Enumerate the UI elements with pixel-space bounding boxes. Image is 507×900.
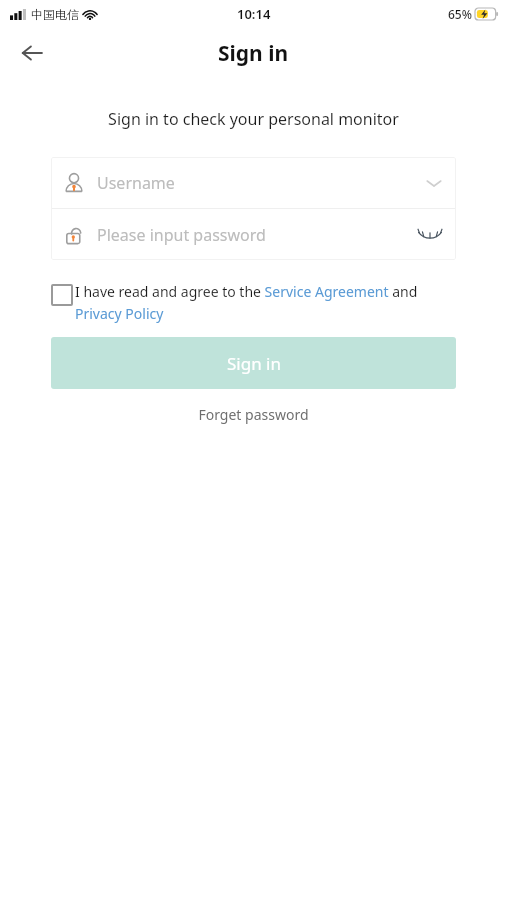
button[interactable]: Username (51, 157, 456, 208)
button[interactable]: Back (8, 29, 56, 77)
staticText: Please input password (97, 224, 416, 246)
button[interactable]: Forget password (0, 405, 507, 424)
staticText: 中国电信 (31, 7, 79, 22)
button[interactable]: Agree to terms (51, 284, 73, 306)
button[interactable]: Sign in (51, 337, 456, 389)
staticText: Username (97, 172, 424, 194)
staticText: Sign in to check your personal monitor (0, 108, 507, 130)
staticText: 10:14 (237, 5, 271, 23)
staticText: Sign in (227, 352, 281, 375)
staticText: Sign in (218, 39, 289, 68)
staticText: 65% (448, 6, 472, 22)
button[interactable]: Please input password (51, 209, 456, 260)
button[interactable]: Show password (416, 221, 444, 249)
button[interactable]: I have read and agree to the Service Agr… (75, 282, 456, 323)
